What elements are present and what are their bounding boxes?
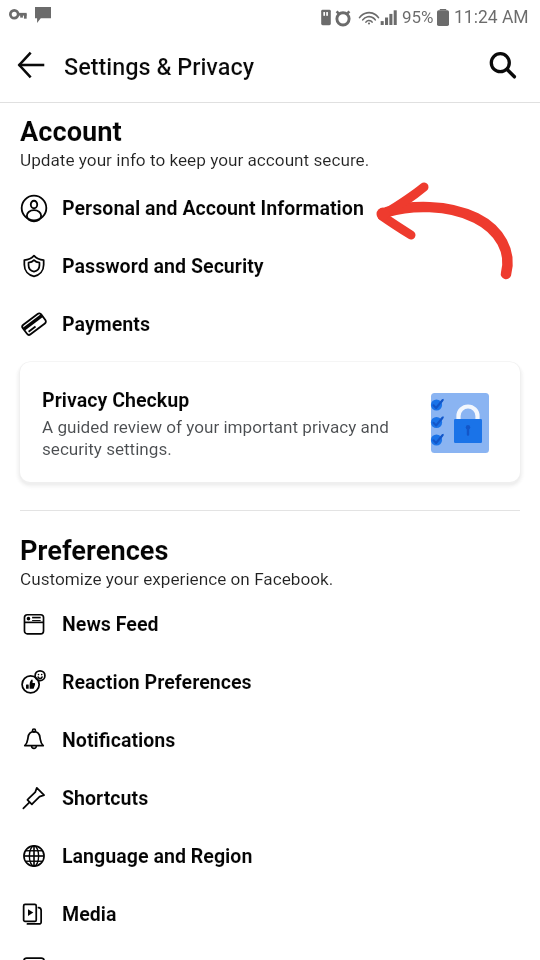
- button[interactable]: Search: [475, 38, 531, 94]
- button[interactable]: Personal and Account Information: [0, 179, 540, 237]
- staticText: Password and Security: [62, 255, 264, 278]
- button[interactable]: Language and Region: [0, 827, 540, 885]
- staticText: Account: [20, 116, 122, 148]
- button[interactable]: [20, 362, 520, 482]
- staticText: Privacy Checkup: [42, 389, 190, 412]
- button[interactable]: Shortcuts: [0, 769, 540, 827]
- button[interactable]: Media: [0, 885, 540, 943]
- staticText: Personal and Account Information: [62, 197, 364, 220]
- staticText: Preferences: [20, 535, 169, 567]
- button[interactable]: [0, 943, 540, 960]
- staticText: Settings & Privacy: [64, 53, 255, 80]
- button[interactable]: News Feed: [0, 595, 540, 653]
- staticText: A guided review of your important privac…: [42, 417, 389, 437]
- staticText: 11:24 AM: [454, 7, 529, 28]
- staticText: security settings.: [42, 439, 172, 459]
- staticText: News Feed: [62, 613, 159, 636]
- button[interactable]: Password and Security: [0, 237, 540, 295]
- button[interactable]: Notifications: [0, 711, 540, 769]
- staticText: Customize your experience on Facebook.: [20, 569, 334, 589]
- staticText: Reaction Preferences: [62, 671, 252, 694]
- staticText: Notifications: [62, 729, 176, 752]
- staticText: Media: [62, 903, 117, 926]
- button[interactable]: Back: [3, 37, 59, 93]
- staticText: 95%: [402, 7, 434, 27]
- staticText: Update your info to keep your account se…: [20, 150, 370, 170]
- staticText: Payments: [62, 313, 150, 336]
- button[interactable]: Payments: [0, 295, 540, 353]
- button[interactable]: Reaction Preferences: [0, 653, 540, 711]
- staticText: Shortcuts: [62, 787, 149, 810]
- staticText: Language and Region: [62, 845, 253, 868]
